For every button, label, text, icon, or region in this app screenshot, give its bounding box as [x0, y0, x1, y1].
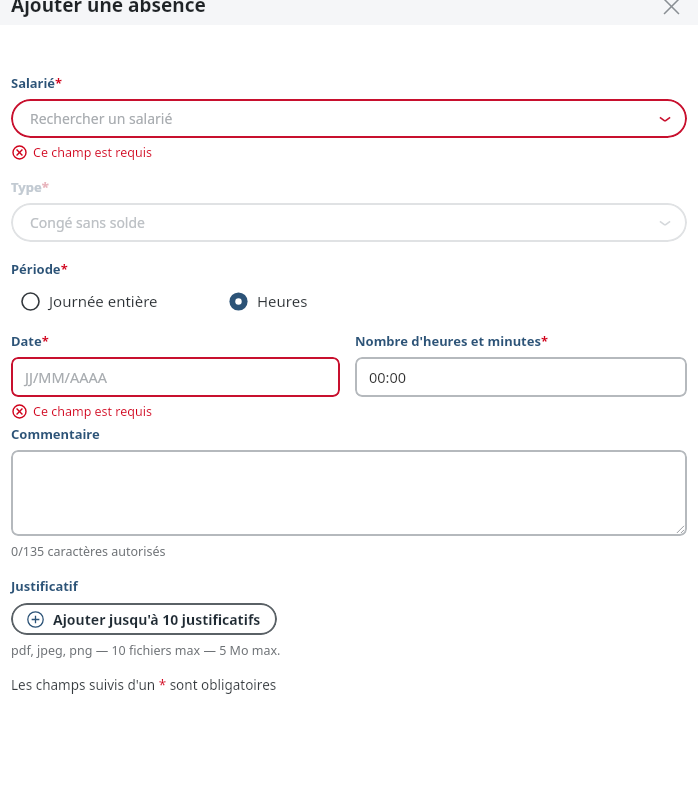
button[interactable]: Journée entière	[21, 289, 158, 313]
staticText: Ce champ est requis	[33, 144, 152, 161]
staticText: Ce champ est requis	[33, 403, 152, 420]
staticText: JJ/MM/AAAA	[25, 367, 108, 387]
staticText: pdf, jpeg, png — 10 fichiers max — 5 Mo …	[11, 642, 281, 659]
staticText: Salarié*	[11, 74, 63, 92]
staticText: Date*	[11, 332, 49, 350]
staticText: Congé sans solde	[30, 213, 657, 232]
staticText: Période*	[11, 260, 68, 278]
staticText: Rechercher un salarié	[30, 109, 657, 128]
button[interactable]: Ajouter jusqu'à 10 justificatifs	[11, 603, 277, 635]
button[interactable]: Heures	[229, 289, 308, 313]
staticText: Ajouter jusqu'à 10 justificatifs	[53, 610, 261, 629]
staticText: Journée entière	[49, 291, 158, 311]
staticText: Ajouter une absence	[11, 0, 206, 17]
staticText: 0/135 caractères autorisés	[11, 543, 166, 560]
staticText: Nombre d'heures et minutes*	[355, 332, 549, 350]
staticText: Les champs suivis d'un * sont obligatoir…	[11, 676, 277, 694]
button[interactable]: Congé sans solde	[11, 203, 687, 242]
button[interactable]	[11, 450, 687, 536]
button[interactable]: Rechercher un salarié	[11, 99, 687, 138]
staticText: Commentaire	[11, 425, 100, 443]
staticText: Justificatif	[11, 577, 78, 595]
staticText: 00:00	[369, 367, 407, 387]
staticText: Heures	[257, 291, 308, 311]
staticText: Type*	[11, 178, 49, 196]
button[interactable]: JJ/MM/AAAA	[11, 357, 340, 397]
button[interactable]: 00:00	[355, 357, 687, 397]
button[interactable]: Fermer	[658, 0, 684, 19]
